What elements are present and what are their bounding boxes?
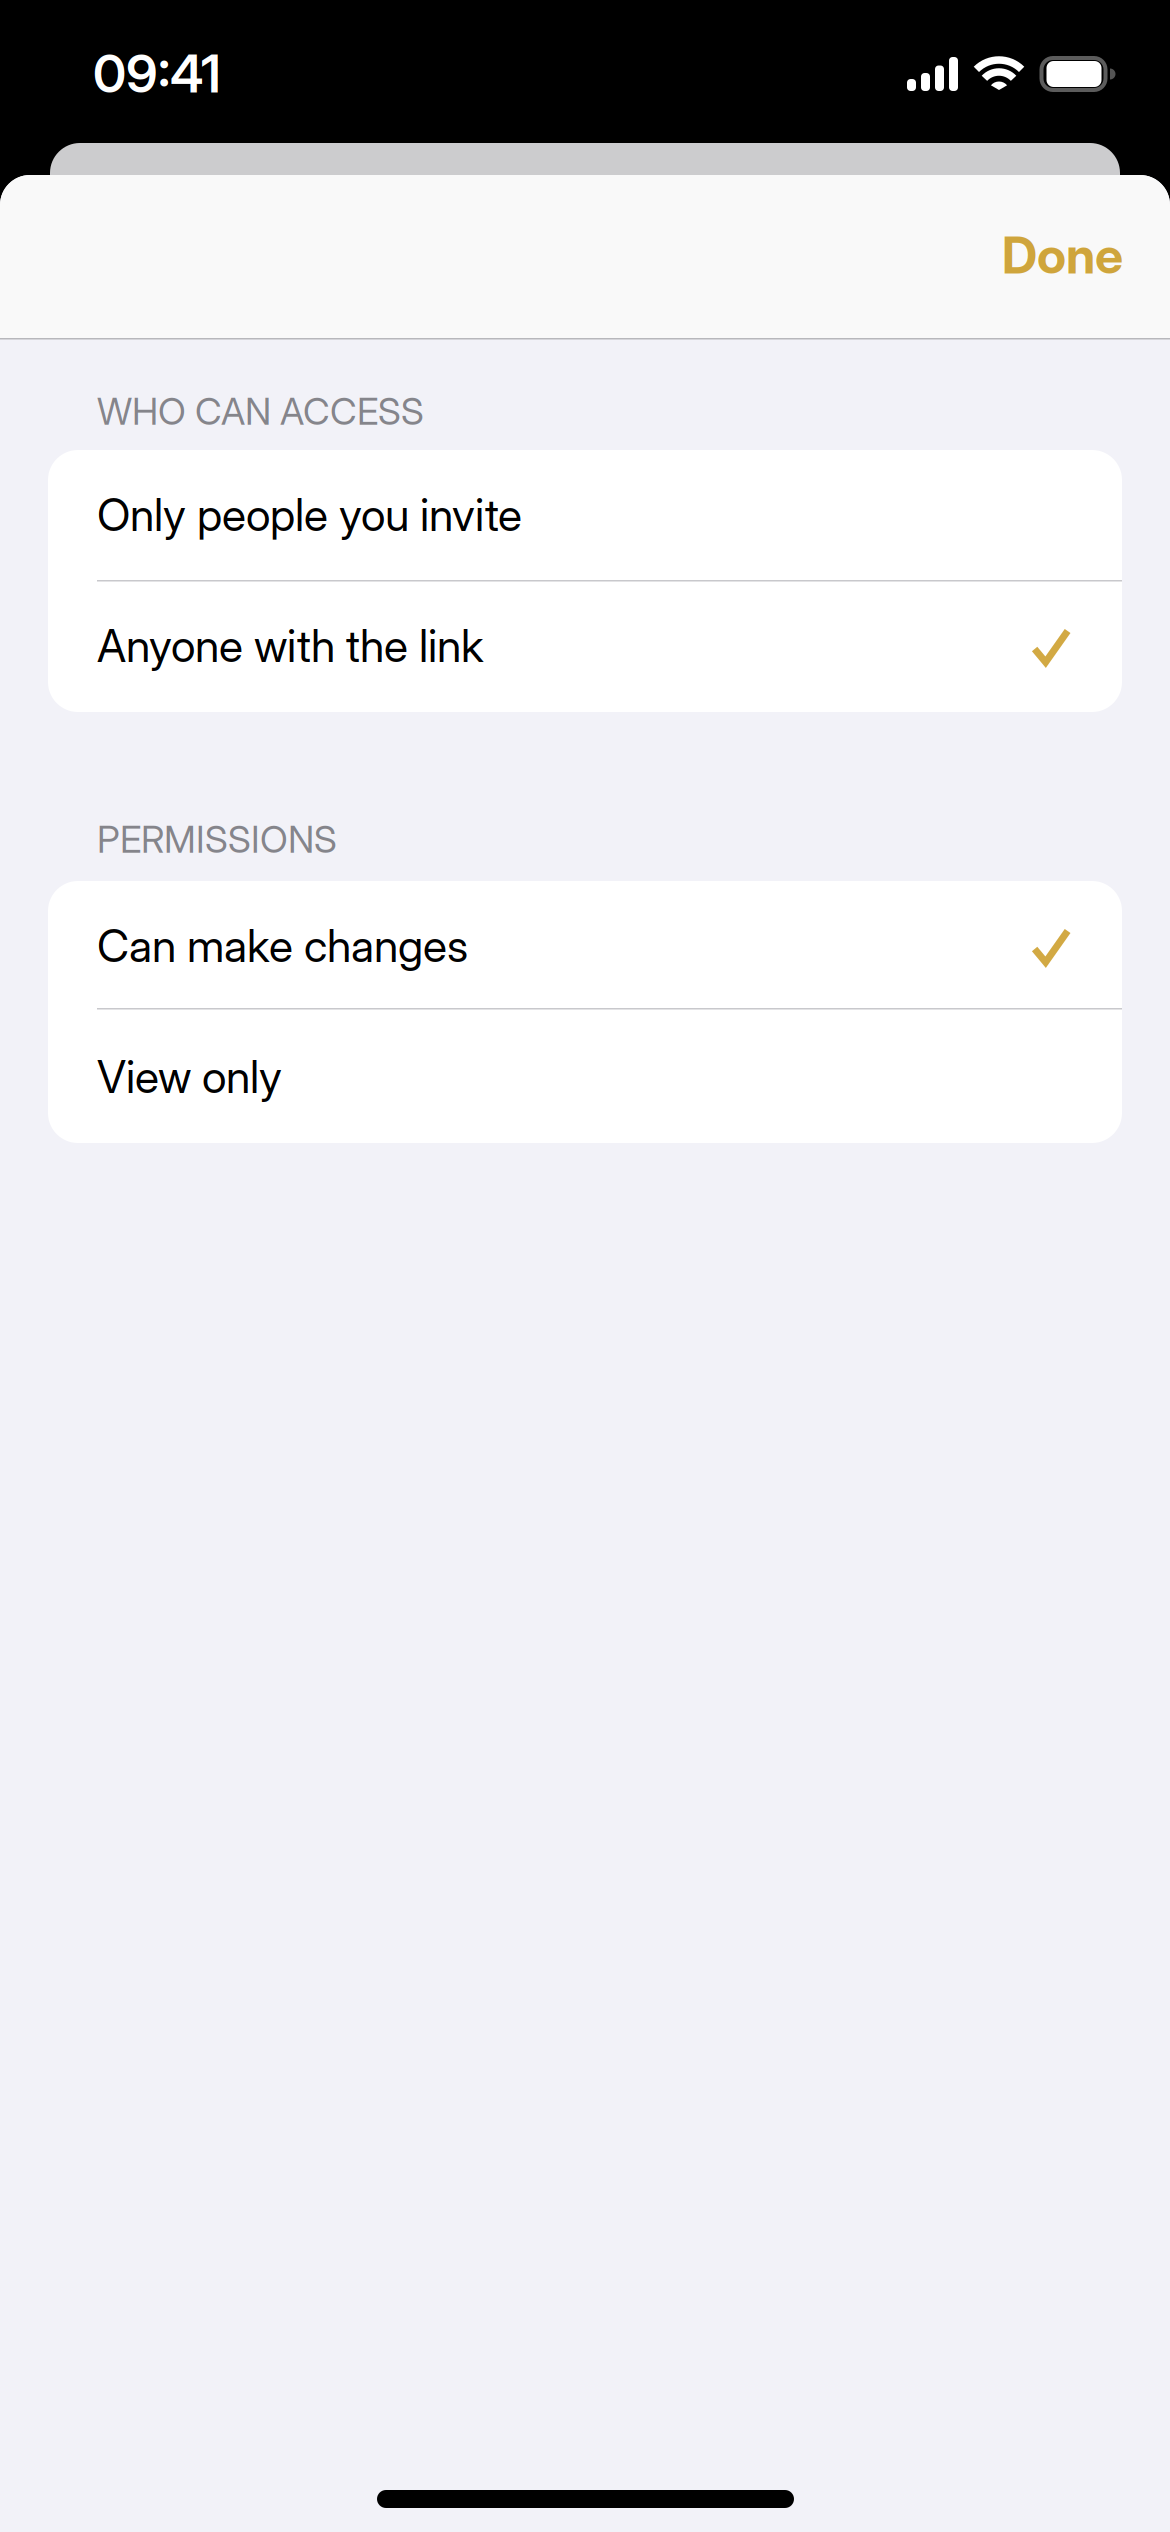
- staticText: PERMISSIONS: [97, 817, 337, 862]
- staticText: WHO CAN ACCESS: [97, 389, 424, 434]
- button[interactable]: Anyone with the link: [48, 581, 1122, 712]
- button[interactable]: Done: [0, 225, 1123, 285]
- staticText: Only people you invite: [97, 488, 522, 542]
- staticText: View only: [97, 1050, 282, 1104]
- staticText: Anyone with the link: [97, 619, 484, 673]
- staticText: Done: [1002, 225, 1123, 285]
- button[interactable]: View only: [48, 1012, 1122, 1143]
- button[interactable]: Only people you invite: [48, 450, 1122, 581]
- button[interactable]: Can make changes: [48, 881, 1122, 1012]
- staticText: 09:41: [93, 42, 221, 105]
- staticText: Can make changes: [97, 919, 468, 973]
